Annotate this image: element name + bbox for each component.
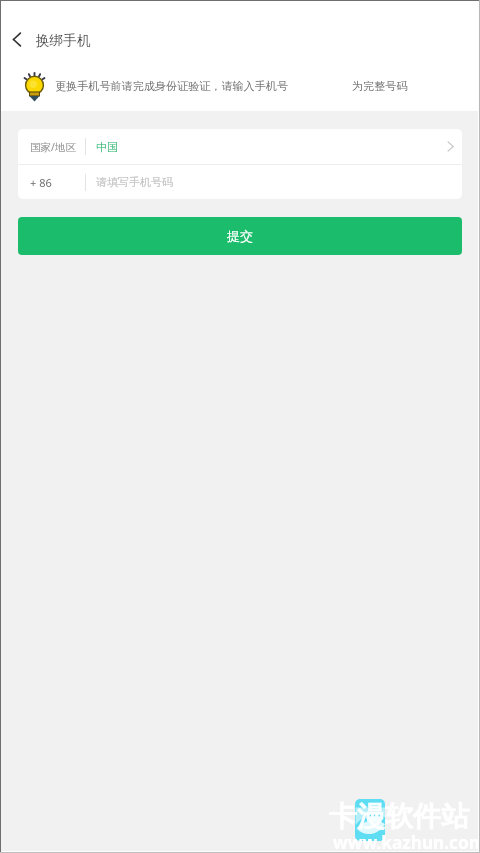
staticText: 为完整号码 <box>352 79 408 93</box>
staticText: 请填写手机号码 <box>96 175 173 189</box>
staticText: 中国 <box>96 140 118 154</box>
button[interactable]: + 86 <box>18 165 462 199</box>
button[interactable]: Back <box>0 22 33 56</box>
staticText: 卡漫软件站 <box>329 799 469 834</box>
staticText: 更换手机号前请完成身份证验证，请输入手机号 <box>55 79 288 93</box>
button[interactable]: 提交 <box>18 217 462 255</box>
staticText: + 86 <box>30 175 52 190</box>
button[interactable]: 国家/地区 <box>18 129 462 164</box>
staticText: 提交 <box>227 228 253 244</box>
staticText: www.kazhun.com <box>333 831 480 853</box>
staticText: 国家/地区 <box>30 140 76 154</box>
staticText: 换绑手机 <box>36 32 91 49</box>
